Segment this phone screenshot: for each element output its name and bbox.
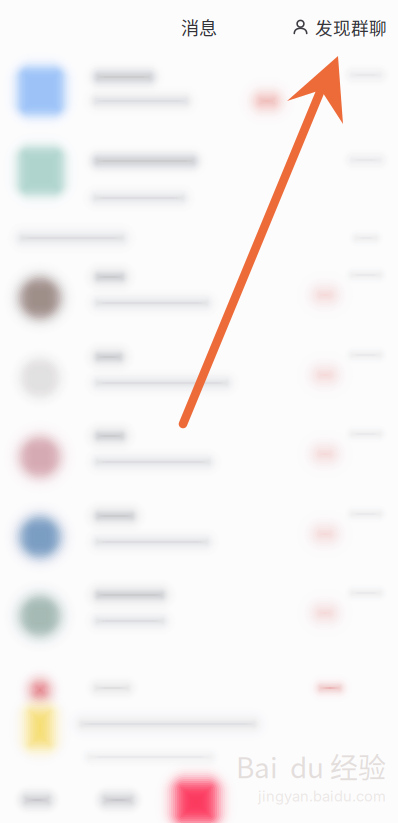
staticText: 消息 — [181, 14, 217, 40]
button[interactable]: 发现群聊 — [289, 7, 391, 47]
staticText: Bai du 经验 — [236, 746, 386, 786]
staticText: jingyan.baidu.com — [258, 787, 386, 805]
staticText: 发现群聊 — [315, 14, 387, 40]
